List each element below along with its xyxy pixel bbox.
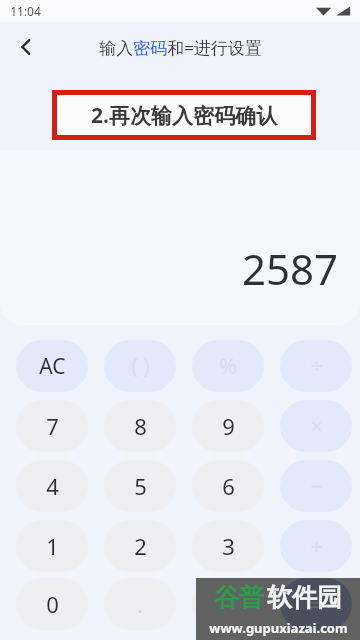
button[interactable] bbox=[192, 578, 264, 630]
button[interactable]: 3 bbox=[192, 520, 264, 572]
staticText: + bbox=[310, 532, 323, 561]
button[interactable]: 8 bbox=[104, 400, 176, 452]
button[interactable]: = bbox=[280, 578, 352, 630]
button[interactable]: 6 bbox=[192, 460, 264, 512]
button[interactable]: Back bbox=[6, 27, 46, 67]
button[interactable]: AC bbox=[16, 340, 88, 392]
staticText: 2.再次输入密码确认 bbox=[91, 101, 277, 130]
button[interactable]: × bbox=[280, 400, 352, 452]
button[interactable]: 9 bbox=[192, 400, 264, 452]
staticText: 谷普 bbox=[214, 582, 264, 613]
staticText: 9 bbox=[222, 411, 235, 441]
staticText: 输入密码和=进行设置 bbox=[99, 36, 262, 59]
button[interactable]: ÷ bbox=[280, 340, 352, 392]
staticText: 8 bbox=[134, 411, 147, 441]
staticText: ( ) bbox=[131, 352, 150, 381]
staticText: 11:04 bbox=[10, 3, 41, 19]
staticText: × bbox=[310, 412, 323, 441]
staticText: 软件园 bbox=[267, 582, 342, 613]
staticText: 3 bbox=[222, 531, 235, 561]
staticText: 6 bbox=[222, 471, 235, 501]
staticText: 0 bbox=[46, 589, 59, 619]
button[interactable]: 5 bbox=[104, 460, 176, 512]
staticText: 2 bbox=[134, 531, 147, 561]
staticText: 2587 bbox=[241, 240, 338, 297]
staticText: = bbox=[310, 589, 323, 619]
button[interactable]: 1 bbox=[16, 520, 88, 572]
button[interactable]: 0 bbox=[16, 578, 88, 630]
staticText: AC bbox=[39, 352, 66, 381]
staticText: 1 bbox=[46, 531, 59, 561]
staticText: www.gupuxiazai.com bbox=[209, 619, 348, 637]
staticText: 5 bbox=[134, 471, 147, 501]
button[interactable]: ( ) bbox=[104, 340, 176, 392]
staticText: 4 bbox=[46, 471, 59, 501]
button[interactable]: 4 bbox=[16, 460, 88, 512]
staticText: % bbox=[219, 352, 237, 381]
staticText: ÷ bbox=[310, 352, 323, 381]
button[interactable]: 2 bbox=[104, 520, 176, 572]
button[interactable]: % bbox=[192, 340, 264, 392]
staticText: . bbox=[137, 589, 143, 619]
button[interactable]: + bbox=[280, 520, 352, 572]
button[interactable]: 7 bbox=[16, 400, 88, 452]
staticText: 7 bbox=[46, 411, 59, 441]
button[interactable]: − bbox=[280, 460, 352, 512]
